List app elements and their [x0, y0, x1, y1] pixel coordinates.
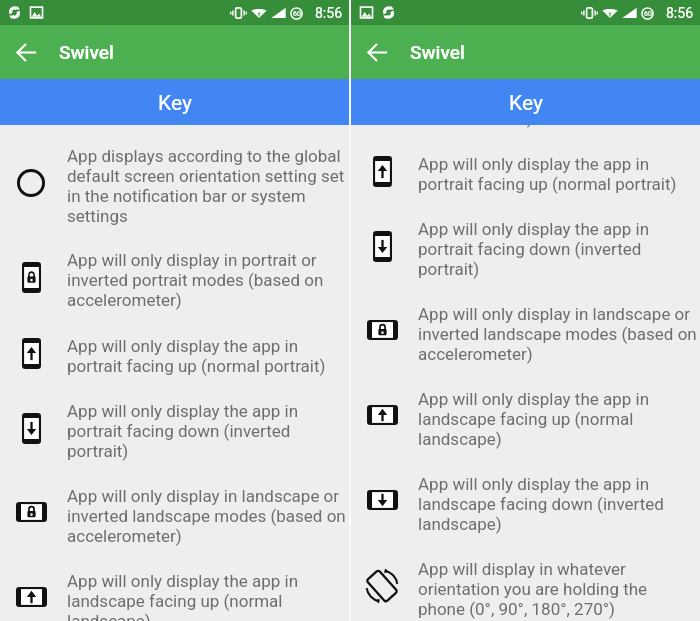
staticText: App will only display the app in landsca… [418, 474, 698, 534]
staticText: App will only display in landscape or in… [418, 304, 698, 364]
button[interactable]: App will only display the app in portrai… [0, 310, 349, 376]
button[interactable]: App will only display the app in portrai… [0, 376, 349, 461]
button[interactable]: Key [351, 79, 700, 125]
staticText: App will only display the app in landsca… [67, 571, 347, 621]
staticText: Key [509, 91, 543, 116]
staticText: App will only display the app in landsca… [418, 389, 698, 449]
button[interactable]: App will only display the app in landsca… [351, 449, 700, 534]
staticText: Key [158, 91, 192, 116]
staticText: Swivel [59, 41, 114, 63]
button[interactable]: App will only display the app in landsca… [0, 546, 349, 621]
button[interactable]: App will display in whatever orientation… [351, 534, 700, 619]
button[interactable]: App will only display the app in landsca… [351, 364, 700, 449]
button[interactable]: App will only display in landscape or in… [351, 279, 700, 364]
button[interactable]: App will only display in landscape or in… [0, 461, 349, 546]
staticText: App will only display in landscape or in… [67, 486, 347, 546]
staticText: App will display in whatever orientation… [418, 559, 698, 619]
button[interactable]: App will only display in portrait or inv… [351, 125, 700, 128]
staticText: Swivel [410, 41, 465, 63]
button[interactable]: Navigate back [6, 32, 46, 72]
staticText: 60 [644, 10, 652, 18]
button[interactable]: Key [0, 79, 349, 125]
staticText: 8:56 [315, 5, 342, 21]
button[interactable]: App displays according to the global def… [0, 146, 349, 226]
button[interactable]: App will only display the app in portrai… [351, 194, 700, 279]
staticText: App will only display the app in portrai… [418, 219, 698, 279]
button[interactable]: App will only display the app in portrai… [351, 128, 700, 194]
staticText: App will only display in portrait or inv… [418, 125, 698, 128]
staticText: App displays according to the global def… [67, 146, 347, 226]
staticText: 8:56 [666, 5, 693, 21]
staticText: 60 [293, 10, 301, 18]
staticText: App will only display the app in portrai… [418, 154, 698, 194]
staticText: App will only display the app in portrai… [67, 401, 347, 461]
button[interactable]: Navigate back [357, 32, 397, 72]
button[interactable]: App will only display in portrait or inv… [0, 226, 349, 310]
staticText: App will only display in portrait or inv… [67, 250, 347, 310]
staticText: App will only display the app in portrai… [67, 336, 347, 376]
